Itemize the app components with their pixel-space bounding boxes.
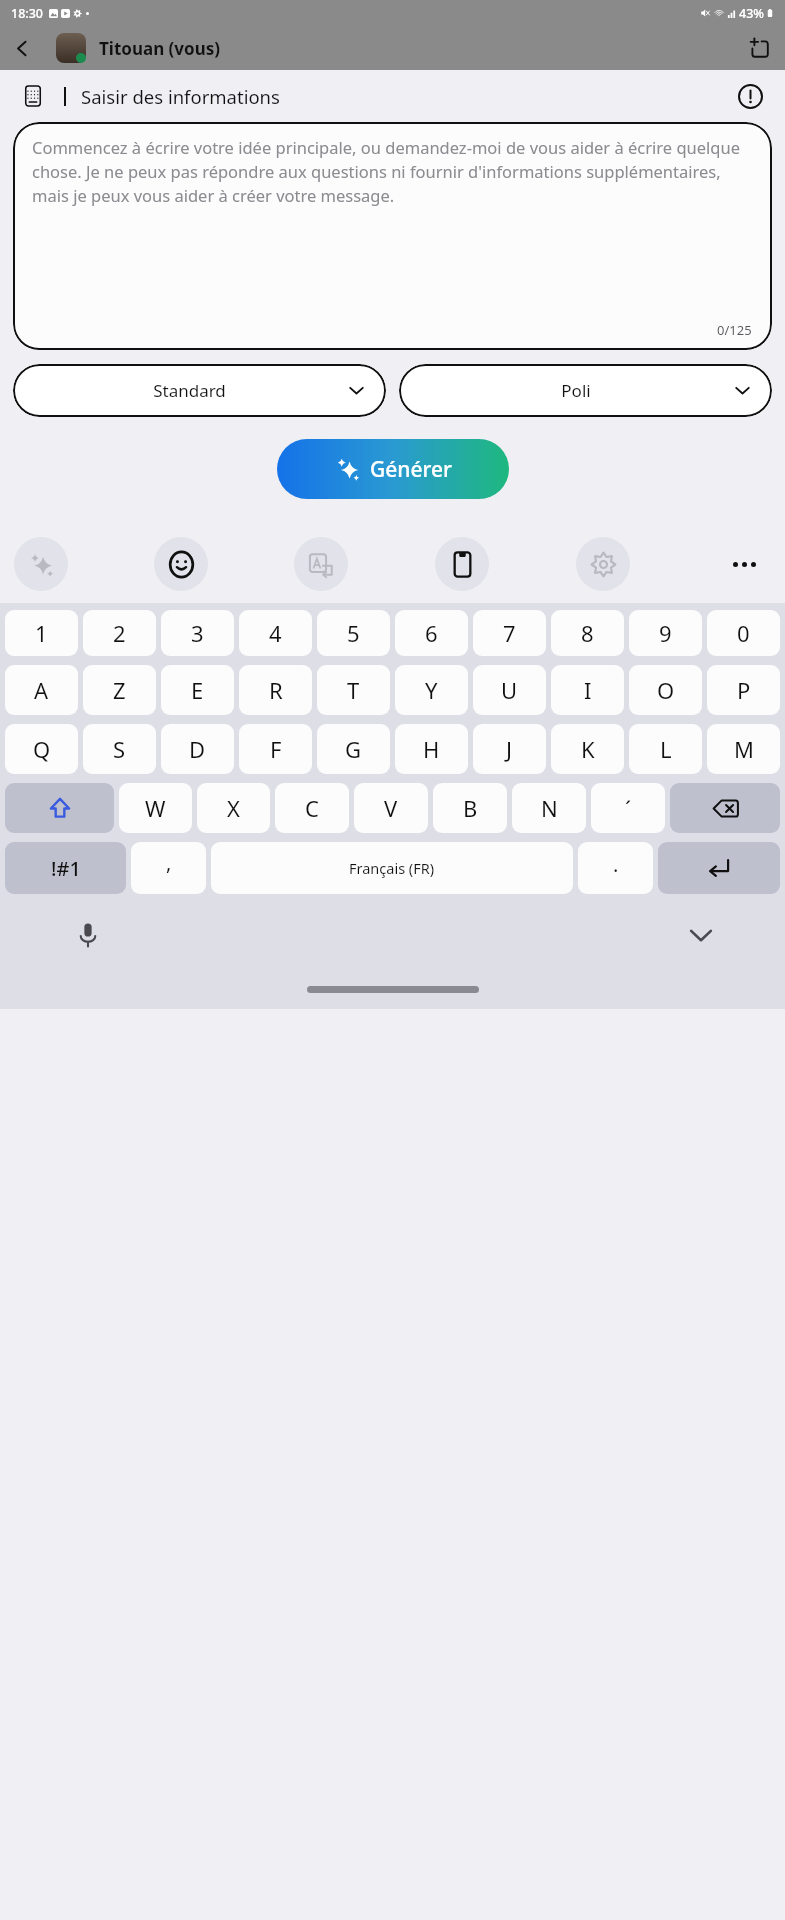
button[interactable]: T [317,665,390,715]
staticText: M [734,734,754,764]
button[interactable]: 7 [473,610,546,656]
staticText: 0 [737,618,750,648]
button[interactable]: . [578,842,653,894]
staticText: Français (FR) [349,858,435,878]
button[interactable]: Translate [294,537,348,591]
button[interactable]: Clipboard [435,537,489,591]
staticText: 9 [659,618,672,648]
button[interactable]: Z [83,665,156,715]
button[interactable]: Emoji [154,537,208,591]
button[interactable]: D [161,724,234,774]
button[interactable]: 4 [239,610,312,656]
staticText: Commencez à écrire votre idée principale… [32,136,756,207]
button[interactable]: 8 [551,610,624,656]
button[interactable]: Standard [13,364,386,417]
button[interactable]: 6 [395,610,468,656]
staticText: Poli [561,379,591,402]
button[interactable]: Q [5,724,78,774]
button[interactable]: ´ [591,783,665,833]
button[interactable]: Commencez à écrire votre idée principale… [13,122,772,350]
button[interactable]: N [512,783,586,833]
staticText: 8 [581,618,594,648]
staticText: K [581,734,595,764]
button[interactable]: Add note [733,26,785,70]
button[interactable]: A [5,665,78,715]
button[interactable]: V [354,783,428,833]
staticText: D [189,734,206,764]
button[interactable]: Poli [399,364,772,417]
staticText: Saisir des informations [81,84,280,109]
button[interactable]: More options [717,537,771,591]
button[interactable]: H [395,724,468,774]
staticText: Y [425,675,438,705]
button[interactable]: Shift [5,783,114,833]
staticText: 6 [425,618,438,648]
staticText: P [737,675,751,705]
staticText: I [584,675,592,705]
button[interactable]: E [161,665,234,715]
staticText: B [463,793,478,823]
staticText: !#1 [51,855,81,882]
staticText: Q [33,734,51,764]
button[interactable]: Backspace [670,783,780,833]
staticText: Titouan (vous) [99,37,221,60]
button[interactable]: L [629,724,702,774]
staticText: 0/125 [717,321,752,339]
button[interactable]: W [119,783,192,833]
button[interactable]: C [275,783,349,833]
button[interactable]: Y [395,665,468,715]
button[interactable]: R [239,665,312,715]
button[interactable]: Information [731,77,769,115]
button[interactable]: O [629,665,702,715]
button[interactable]: , [131,842,206,894]
button[interactable]: B [433,783,507,833]
button[interactable]: F [239,724,312,774]
staticText: 4 [269,618,282,648]
button[interactable]: Voice input [62,909,114,961]
button[interactable]: Français (FR) [211,842,573,894]
staticText: A [34,675,49,705]
button[interactable]: U [473,665,546,715]
button[interactable]: 9 [629,610,702,656]
button[interactable]: K [551,724,624,774]
button[interactable]: Hide keyboard [675,909,727,961]
button[interactable]: Générer [277,439,509,499]
staticText: . [613,851,619,878]
button[interactable]: M [707,724,780,774]
button[interactable]: I [551,665,624,715]
button[interactable]: Write assist [14,537,68,591]
button[interactable]: G [317,724,390,774]
staticText: 7 [503,618,516,648]
staticText: N [541,793,558,823]
button[interactable]: Symbols [5,842,126,894]
staticText: O [657,675,675,705]
staticText: U [501,675,518,705]
staticText: 1 [35,618,48,648]
staticText: ´ [625,793,632,823]
staticText: 5 [347,618,360,648]
staticText: R [269,675,283,705]
staticText: Z [113,675,126,705]
staticText: W [145,793,166,823]
button[interactable]: 5 [317,610,390,656]
button[interactable]: 3 [161,610,234,656]
button[interactable]: Enter [658,842,780,894]
button[interactable]: 0 [707,610,780,656]
button[interactable]: Keyboard [16,79,50,113]
staticText: G [345,734,362,764]
staticText: V [384,793,398,823]
button[interactable]: P [707,665,780,715]
button[interactable]: Back [0,26,44,70]
staticText: 43% [739,5,764,22]
staticText: J [506,734,513,764]
staticText: 3 [191,618,204,648]
button[interactable]: 2 [83,610,156,656]
staticText: L [660,734,672,764]
button[interactable]: 1 [5,610,78,656]
button[interactable]: Settings [576,537,630,591]
staticText: F [270,734,282,764]
staticText: 18:30 [11,5,44,22]
button[interactable]: J [473,724,546,774]
button[interactable]: S [83,724,156,774]
button[interactable]: X [197,783,270,833]
